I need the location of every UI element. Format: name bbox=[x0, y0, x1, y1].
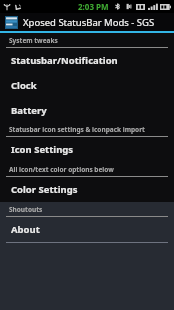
staticText: Battery bbox=[11, 104, 47, 117]
staticText: 2:03 PM bbox=[78, 1, 109, 12]
button[interactable]: About bbox=[0, 217, 174, 242]
staticText: Shoutouts bbox=[9, 205, 43, 214]
staticText: Clock bbox=[11, 79, 37, 92]
staticText: Color Settings bbox=[11, 183, 78, 196]
button[interactable]: Color Settings bbox=[0, 177, 174, 202]
staticText: About bbox=[11, 223, 40, 236]
button[interactable]: Clock bbox=[0, 73, 174, 98]
staticText: Xposed StatusBar Mods - SGS bbox=[23, 16, 155, 29]
staticText: Icon Settings bbox=[11, 143, 74, 156]
staticText: Statusbar icon settings & iconpack impor… bbox=[9, 125, 145, 134]
staticText: System tweaks bbox=[9, 36, 58, 45]
button[interactable]: Icon Settings bbox=[0, 137, 174, 162]
button[interactable]: Statusbar/Notification bbox=[0, 48, 174, 73]
staticText: All icon/text color options below bbox=[9, 165, 114, 174]
button[interactable]: Battery bbox=[0, 98, 174, 122]
staticText: Statusbar/Notification bbox=[11, 54, 118, 67]
